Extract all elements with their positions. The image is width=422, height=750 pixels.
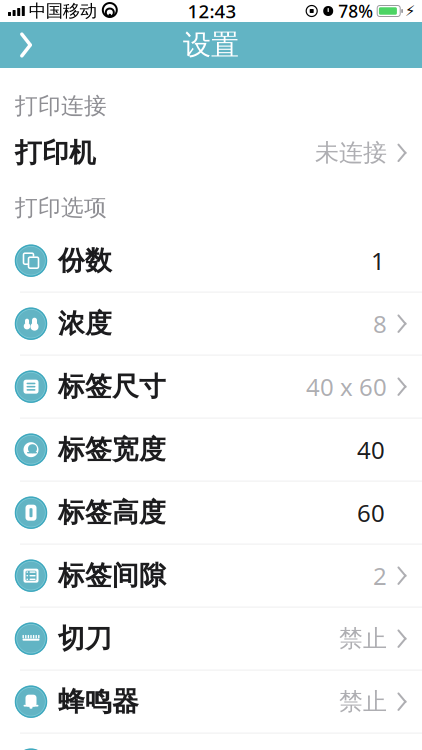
staticText: 打印机 xyxy=(15,136,96,169)
staticText: 标签宽度 xyxy=(58,433,166,466)
staticText: 未连接 xyxy=(315,138,387,168)
button[interactable]: 浓度 xyxy=(0,293,422,355)
staticText: 禁止 xyxy=(339,624,387,653)
staticText: ⚡︎ xyxy=(405,3,415,19)
staticText: 浓度 xyxy=(58,307,112,340)
button[interactable]: Back xyxy=(0,22,52,68)
staticText: 40 xyxy=(357,434,385,466)
button[interactable]: 标签尺寸 xyxy=(0,356,422,418)
staticText: 8 xyxy=(373,308,387,340)
button[interactable]: 标签宽度 xyxy=(0,419,422,481)
staticText: 标签尺寸 xyxy=(58,370,166,403)
staticText: 禁止 xyxy=(339,687,387,716)
staticText: 中国移动 xyxy=(29,0,97,22)
staticText: 60 xyxy=(357,497,385,529)
staticText: 2 xyxy=(373,560,387,592)
button[interactable]: 标签间隙 xyxy=(0,545,422,607)
staticText: 蜂鸣器 xyxy=(58,685,139,718)
button[interactable]: 份数 xyxy=(0,230,422,292)
button[interactable]: 蜂鸣器 xyxy=(0,671,422,733)
staticText: 12:43 xyxy=(187,0,236,23)
staticText: 份数 xyxy=(58,244,112,277)
button[interactable]: 切刀 xyxy=(0,608,422,670)
button[interactable]: 打印机 xyxy=(0,122,422,184)
button[interactable]: 标签高度 xyxy=(0,482,422,544)
staticText: 标签高度 xyxy=(58,496,166,529)
button[interactable]: 钱箱 xyxy=(0,734,422,750)
staticText: 打印选项 xyxy=(15,194,107,222)
staticText: 40 x 60 xyxy=(306,371,387,403)
staticText: 切刀 xyxy=(58,622,112,655)
staticText: 打印连接 xyxy=(15,92,107,120)
staticText: 1 xyxy=(371,245,385,277)
staticText: 78% xyxy=(338,0,373,22)
staticText: 设置 xyxy=(183,28,239,62)
staticText: 标签间隙 xyxy=(58,559,166,592)
